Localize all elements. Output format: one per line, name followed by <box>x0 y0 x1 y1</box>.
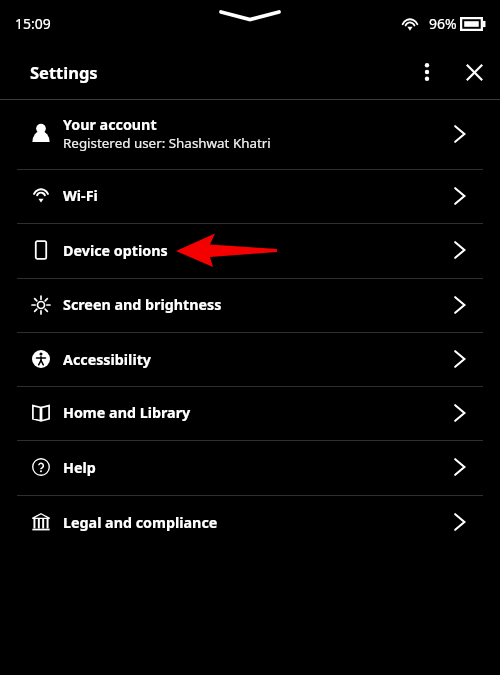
staticText: Your account <box>63 115 157 134</box>
button[interactable]: Screen and brightness <box>0 279 500 332</box>
staticText: Settings <box>30 61 98 83</box>
staticText: Screen and brightness <box>63 295 222 314</box>
button[interactable]: Help <box>0 441 500 495</box>
button[interactable]: Legal and compliance <box>0 496 500 550</box>
button[interactable]: Device options <box>0 224 500 278</box>
button[interactable]: Close <box>452 45 496 99</box>
button[interactable]: Accessibility <box>0 333 500 387</box>
staticText: 15:09 <box>15 14 51 33</box>
button[interactable]: Your account <box>0 100 500 169</box>
staticText: Wi-Fi <box>63 186 98 205</box>
staticText: Registered user: Shashwat Khatri <box>63 134 271 152</box>
staticText: Help <box>63 458 96 477</box>
button[interactable]: Wi-Fi <box>0 170 500 223</box>
staticText: Device options <box>63 241 168 260</box>
button[interactable]: More options <box>404 45 449 99</box>
staticText: 96% <box>429 14 457 33</box>
button[interactable]: Home and Library <box>0 387 500 440</box>
staticText: Legal and compliance <box>63 513 218 532</box>
staticText: Accessibility <box>63 350 152 369</box>
staticText: Home and Library <box>63 403 191 422</box>
